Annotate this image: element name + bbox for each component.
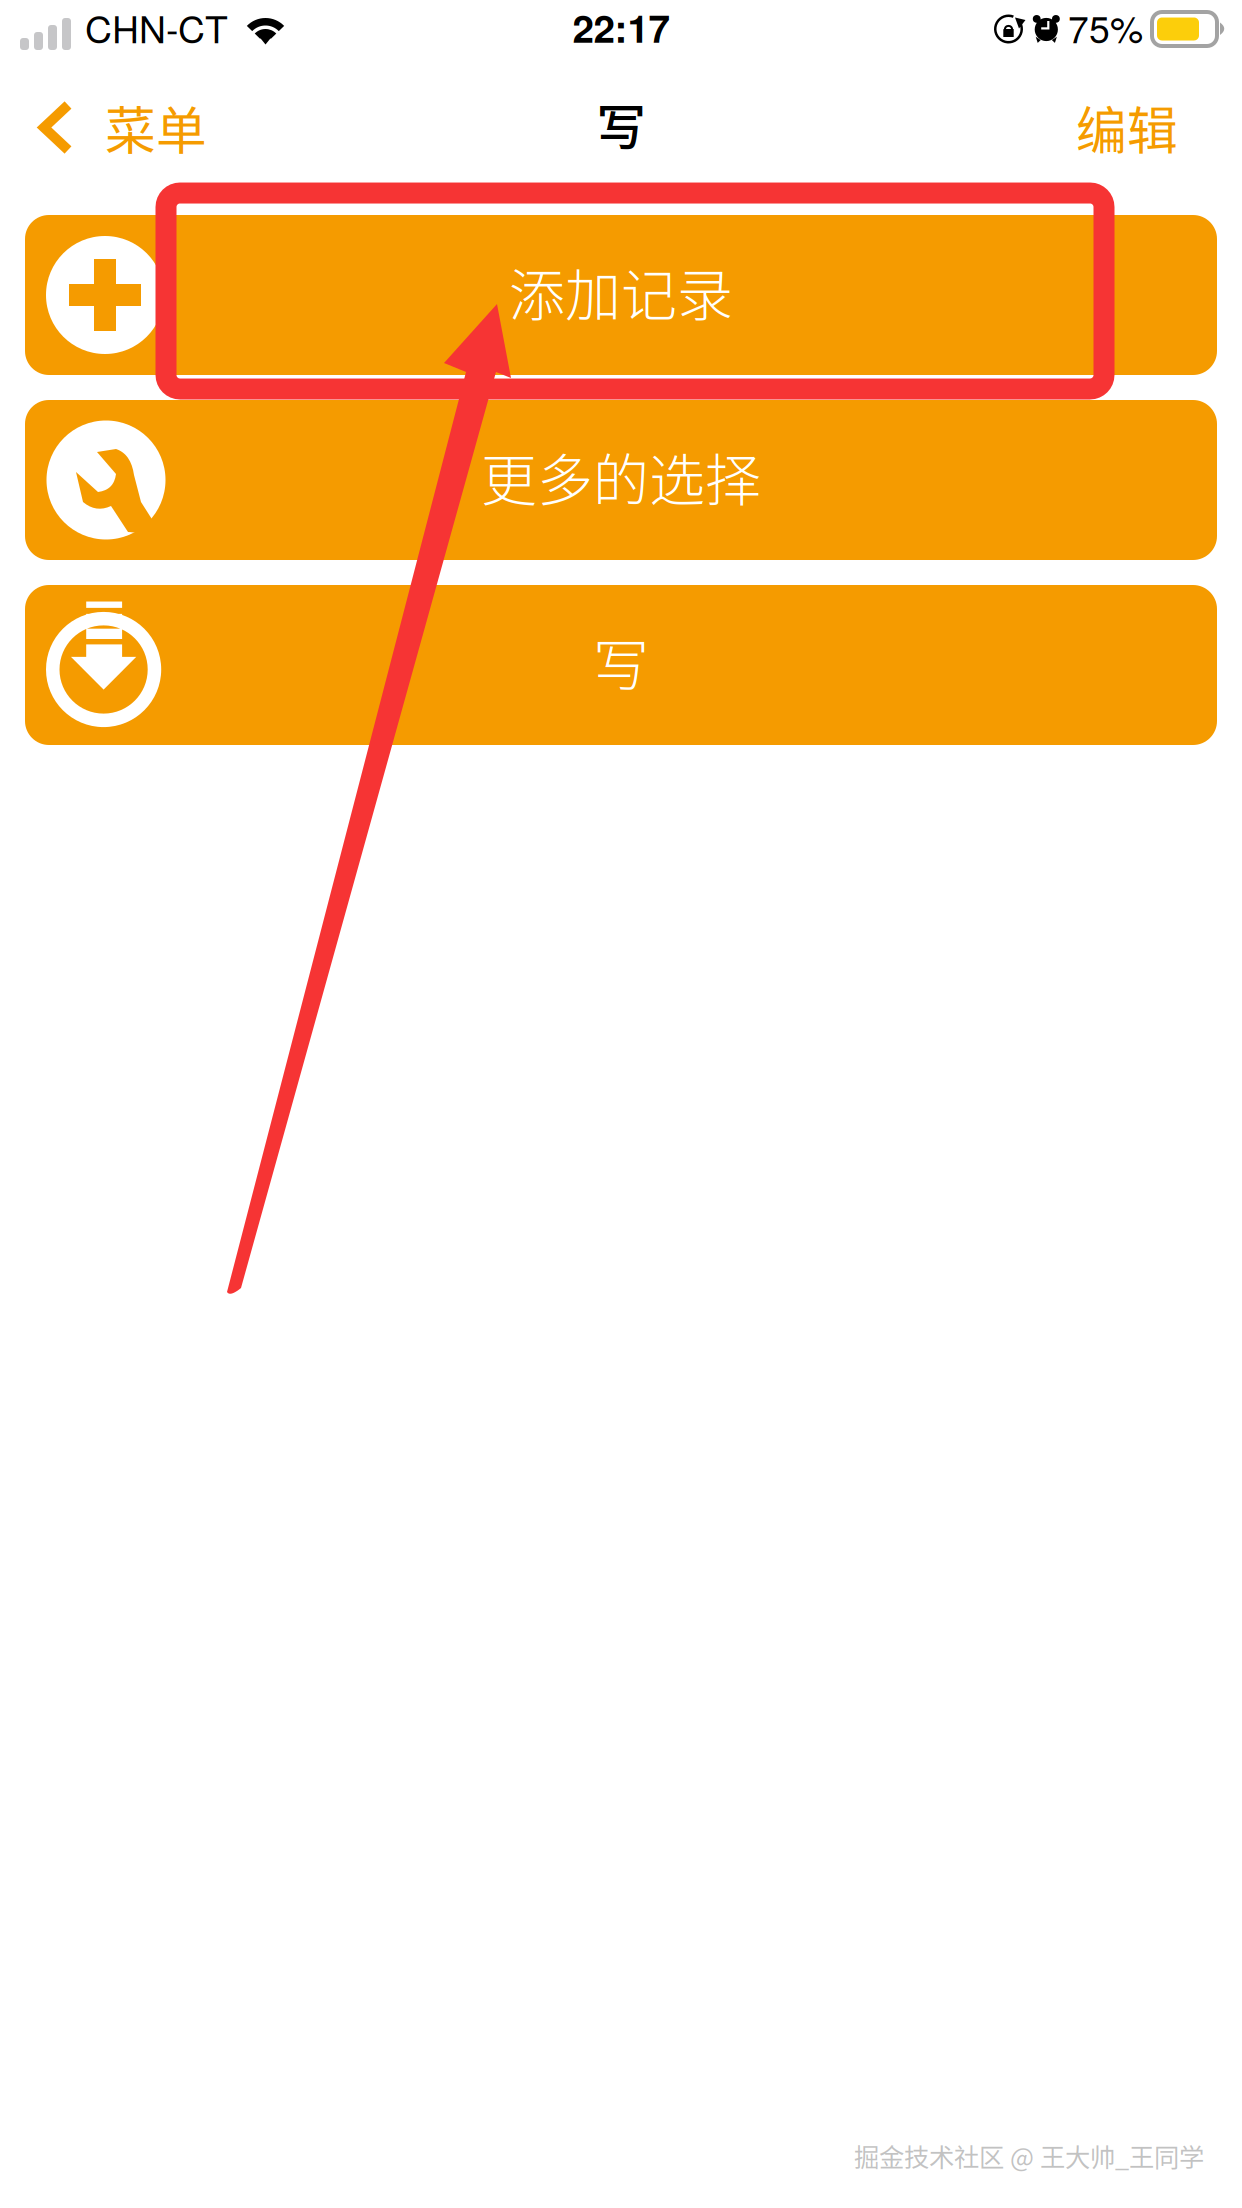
button[interactable]: 菜单: [0, 81, 233, 191]
button[interactable]: 写: [25, 585, 1217, 745]
staticText: 掘金技术社区 @ 王大帅_王同学: [854, 2137, 1204, 2174]
staticText: 75%: [1068, 0, 1143, 54]
staticText: 写: [593, 620, 649, 702]
staticText: 菜单: [105, 91, 207, 164]
button[interactable]: 编辑: [1050, 81, 1242, 191]
staticText: 更多的选择: [481, 435, 761, 517]
staticText: 写: [596, 88, 645, 159]
staticText: CHN-CT: [85, 0, 228, 54]
staticText: 编辑: [1076, 91, 1178, 164]
button[interactable]: 添加记录: [25, 215, 1217, 375]
button[interactable]: 更多的选择: [25, 400, 1217, 560]
staticText: 22:17: [572, 0, 669, 55]
staticText: 添加记录: [509, 250, 733, 332]
